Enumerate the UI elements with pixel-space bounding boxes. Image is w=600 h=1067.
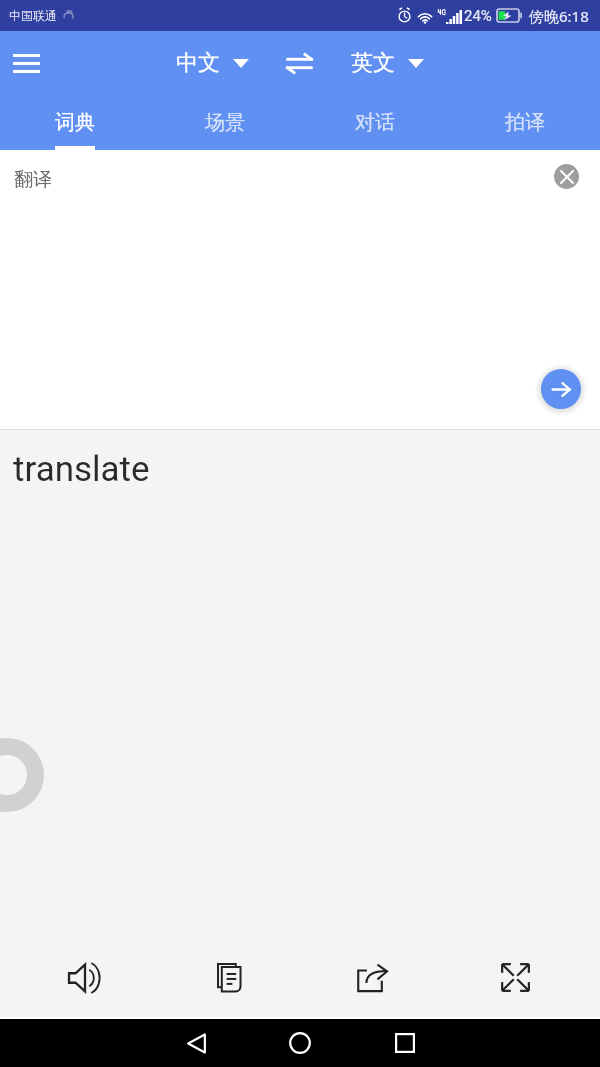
staticText: 场景 [205, 110, 245, 135]
button[interactable]: 对话 [300, 95, 450, 150]
staticText: 24% [464, 7, 492, 25]
button[interactable]: Recent apps [375, 1019, 435, 1067]
button[interactable]: Fullscreen [483, 945, 547, 1009]
staticText: 英文 [351, 49, 395, 77]
staticText: 中国联通 [9, 8, 57, 23]
button[interactable]: Copy [197, 945, 261, 1009]
staticText: 傍晚6:18 [529, 6, 589, 26]
button[interactable]: Back [166, 1019, 226, 1067]
button[interactable]: Share [340, 946, 404, 1010]
button[interactable]: Home [270, 1019, 330, 1067]
button[interactable]: Clear text [554, 164, 579, 189]
staticText: 中文 [176, 49, 220, 77]
staticText: 翻译 [14, 168, 52, 192]
button[interactable]: 词典 [0, 95, 150, 150]
button[interactable]: Play pronunciation [53, 946, 117, 1010]
staticText: translate [13, 449, 150, 490]
button[interactable]: 拍译 [450, 95, 600, 150]
staticText: 对话 [355, 110, 395, 135]
button[interactable]: 场景 [150, 95, 300, 150]
button[interactable]: Translate [541, 369, 581, 409]
button[interactable]: Menu [3, 40, 49, 86]
staticText: 拍译 [505, 110, 545, 135]
button[interactable]: 英文 [343, 40, 432, 86]
button[interactable]: Swap languages [277, 40, 322, 86]
button[interactable]: 中文 [168, 40, 257, 86]
staticText: 词典 [55, 110, 95, 135]
